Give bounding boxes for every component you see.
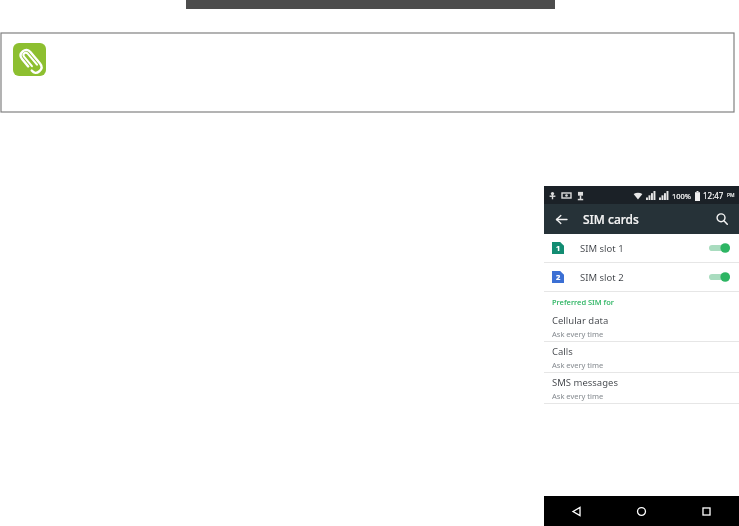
staticText: Ask every time [552, 329, 604, 339]
staticText: Calls [552, 345, 573, 358]
button[interactable]: Calls [544, 342, 739, 372]
button[interactable]: Cellular data [544, 311, 739, 341]
button[interactable]: 1 [544, 234, 739, 262]
staticText: SIM slot 2 [580, 271, 624, 284]
button[interactable]: Back [550, 208, 572, 230]
button[interactable]: SMS messages [544, 373, 739, 403]
button[interactable]: 2 [544, 263, 739, 291]
button[interactable]: Back [544, 496, 609, 526]
staticText: Ask every time [552, 360, 604, 370]
staticText: Preferred SIM for [552, 297, 615, 307]
staticText: SIM slot 1 [580, 242, 624, 255]
staticText: 2 [556, 272, 561, 282]
staticText: SMS messages [552, 376, 618, 389]
staticText: SIM cards [583, 211, 639, 227]
button[interactable]: Home [609, 496, 674, 526]
button[interactable]: Search [711, 208, 733, 230]
staticText: 100% [672, 191, 692, 201]
staticText: Ask every time [552, 391, 604, 401]
staticText: PM [727, 192, 735, 199]
staticText: 12:47 [703, 190, 724, 201]
button[interactable]: Recents [674, 496, 739, 526]
staticText: Cellular data [552, 314, 609, 327]
staticText: 1 [556, 243, 561, 253]
